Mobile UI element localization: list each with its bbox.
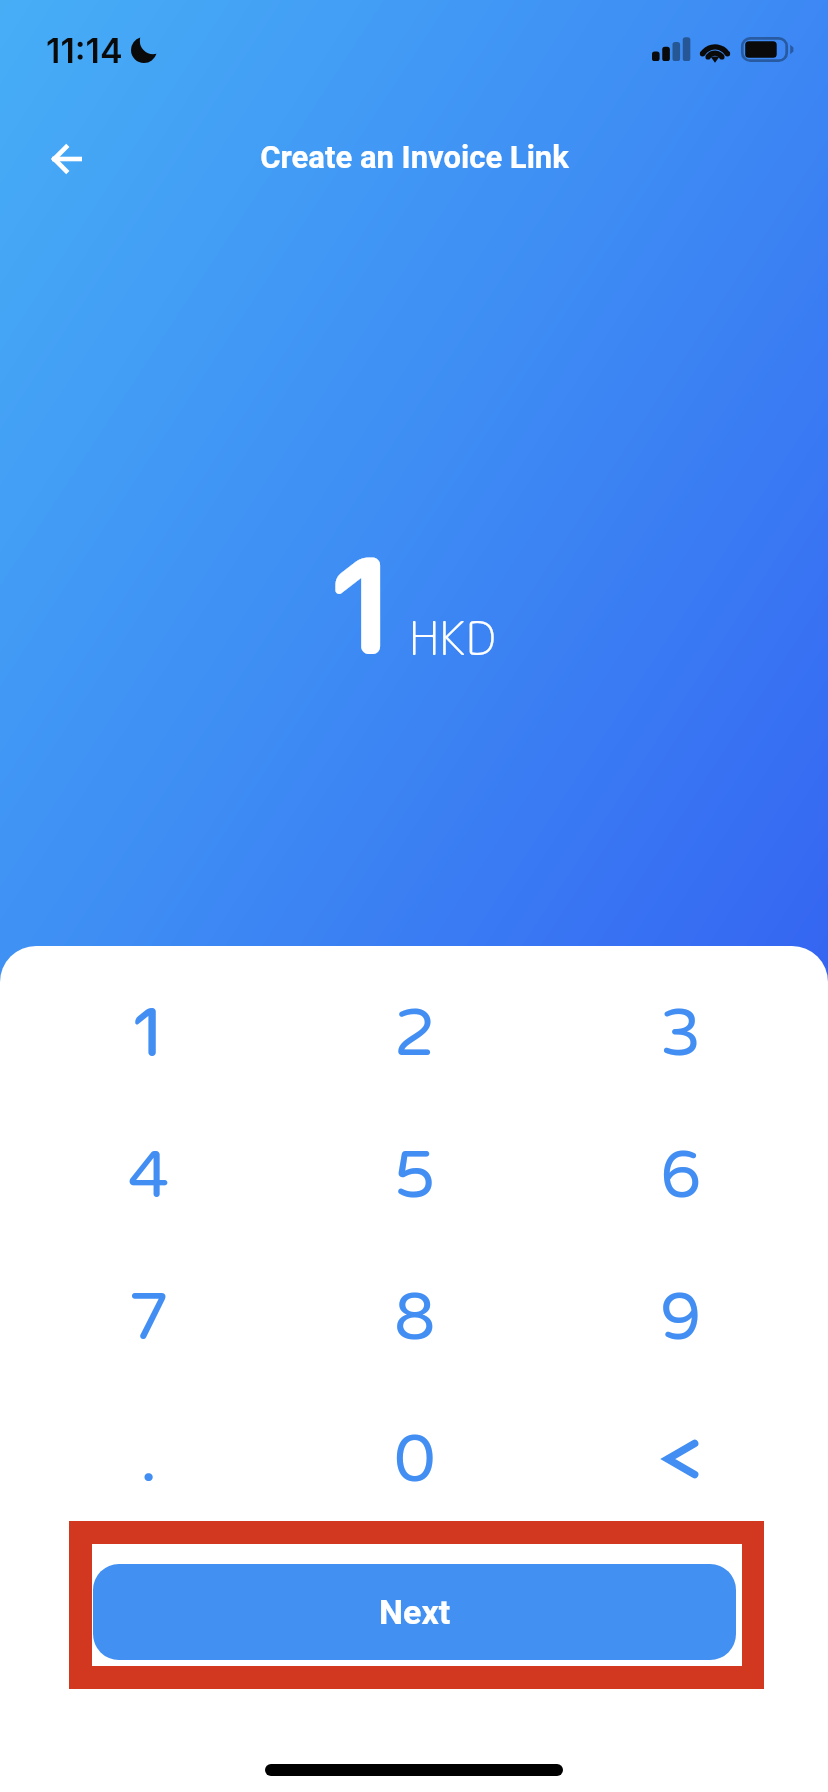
staticText: 1 [322,513,406,696]
staticText: . [140,1420,158,1499]
button[interactable]: 8 [282,1246,548,1388]
button[interactable]: Delete [548,1388,814,1530]
button[interactable]: Next [93,1564,736,1660]
staticText: 2 [394,994,436,1073]
button[interactable]: 3 [548,963,814,1104]
button[interactable]: Back [35,127,99,191]
button[interactable]: 0 [282,1388,548,1530]
staticText: 0 [394,1420,436,1499]
staticText: 8 [394,1278,436,1357]
button[interactable]: 4 [16,1104,282,1246]
staticText: 11:14 [46,30,123,71]
staticText: 3 [660,994,702,1073]
staticText: Next [379,1592,451,1632]
staticText: HKD [409,606,496,670]
staticText: 1 [128,985,170,1077]
staticText: 9 [660,1278,702,1357]
staticText: Create an Invoice Link [260,139,569,175]
staticText: 5 [394,1136,436,1215]
staticText: 7 [128,1278,170,1357]
staticText: 6 [660,1136,702,1215]
button[interactable]: 2 [282,963,548,1104]
button[interactable]: . [16,1388,282,1530]
button[interactable]: 5 [282,1104,548,1246]
button[interactable]: 7 [16,1246,282,1388]
staticText: 4 [128,1136,170,1215]
button[interactable]: 6 [548,1104,814,1246]
button[interactable]: 1 [16,963,282,1104]
button[interactable]: 9 [548,1246,814,1388]
